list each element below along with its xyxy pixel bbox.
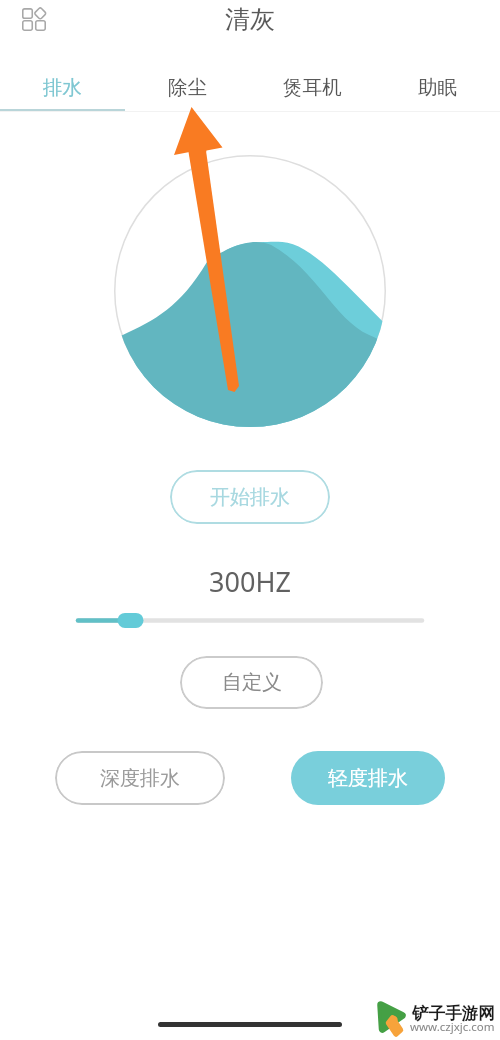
button[interactable]: 轻度排水 — [291, 751, 445, 805]
staticText: 轻度排水 — [328, 766, 408, 791]
button[interactable]: 深度排水 — [55, 751, 225, 805]
staticText: 铲子手游网 — [412, 1003, 495, 1024]
button[interactable]: 排水 — [0, 64, 125, 110]
staticText: 自定义 — [222, 670, 282, 695]
staticText: 排水 — [43, 75, 82, 100]
button[interactable]: 开始排水 — [170, 470, 330, 524]
staticText: 深度排水 — [100, 766, 180, 791]
staticText: 除尘 — [168, 75, 207, 100]
button[interactable]: 煲耳机 — [250, 64, 375, 110]
button[interactable]: Frequency slider — [0, 608, 500, 634]
button[interactable]: 除尘 — [125, 64, 250, 110]
button[interactable]: 自定义 — [180, 656, 323, 709]
staticText: 煲耳机 — [283, 75, 342, 100]
staticText: www.czjxjc.com — [410, 1019, 495, 1035]
button[interactable]: 助眠 — [375, 64, 500, 110]
staticText: 300HZ — [209, 563, 291, 600]
staticText: 清灰 — [225, 4, 275, 35]
button[interactable]: Apps — [12, 0, 56, 41]
staticText: 助眠 — [418, 75, 457, 100]
staticText: 开始排水 — [210, 485, 290, 510]
